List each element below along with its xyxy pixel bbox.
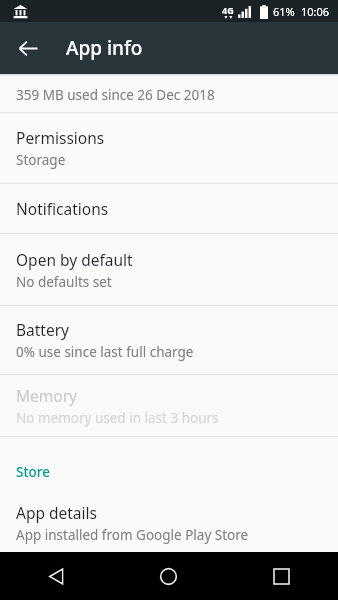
button[interactable]: Back [0, 552, 112, 600]
staticText: Store [16, 463, 51, 481]
staticText: Open by default [16, 249, 133, 270]
staticText: 4G [222, 4, 234, 16]
staticText: Permissions [16, 127, 105, 148]
button[interactable]: Permissions [0, 113, 338, 183]
button[interactable]: Battery [0, 306, 338, 374]
staticText: App details [16, 502, 97, 523]
staticText: 10:06 [301, 4, 330, 19]
button[interactable]: Home [112, 552, 225, 600]
staticText: 61% [273, 4, 295, 19]
staticText: Notifications [16, 198, 109, 219]
staticText: Memory [16, 385, 77, 406]
staticText: Storage [16, 151, 66, 169]
button[interactable]: Notifications [0, 184, 338, 233]
staticText: 0% use since last full charge [16, 343, 194, 361]
button[interactable]: 359 MB used since 26 Dec 2018 [0, 76, 338, 112]
staticText: No defaults set [16, 273, 112, 291]
button[interactable]: App details [0, 494, 338, 552]
staticText: App installed from Google Play Store [16, 526, 249, 544]
staticText: No memory used in last 3 hours [16, 409, 219, 427]
staticText: Battery [16, 319, 70, 340]
staticText: 359 MB used since 26 Dec 2018 [16, 86, 215, 104]
staticText: App info [66, 35, 143, 61]
button[interactable]: Recent apps [225, 552, 338, 600]
button[interactable]: Back [8, 28, 48, 68]
button[interactable]: Open by default [0, 234, 338, 305]
